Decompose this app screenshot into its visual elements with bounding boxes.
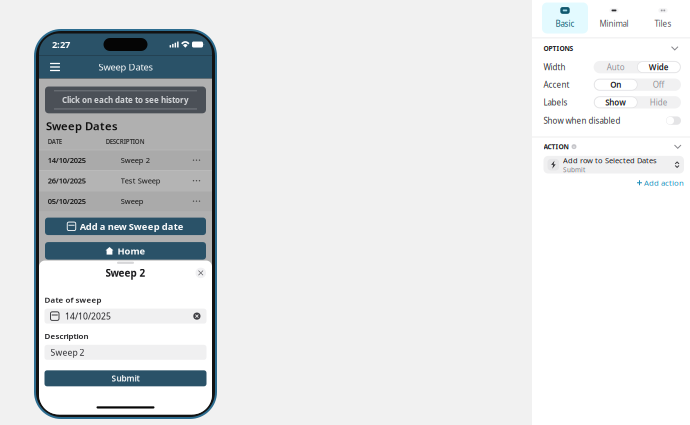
staticText: Add row to Selected Dates xyxy=(563,155,657,165)
button[interactable]: On xyxy=(594,79,637,90)
button[interactable]: Submit xyxy=(44,370,206,386)
staticText: Date of sweep xyxy=(44,294,101,305)
staticText: Minimal xyxy=(599,18,628,29)
staticText: Hide xyxy=(650,97,668,108)
button[interactable]: Tiles xyxy=(640,2,686,33)
staticText: Submit xyxy=(563,165,585,174)
staticText: DATE xyxy=(48,137,62,146)
staticText: Basic xyxy=(555,18,574,29)
button[interactable]: Wide xyxy=(637,62,680,73)
staticText: Submit xyxy=(111,373,139,384)
staticText: Add a new Sweep date xyxy=(80,220,184,232)
button[interactable]: Hide xyxy=(637,97,680,108)
staticText: Sweep 2 xyxy=(121,155,150,165)
button[interactable]: Show xyxy=(594,97,637,108)
button[interactable]: Click on each date to see history xyxy=(45,86,206,113)
staticText: Test Sweep xyxy=(121,176,161,186)
button[interactable]: Basic xyxy=(542,2,588,33)
button[interactable]: Auto xyxy=(594,62,637,73)
button[interactable]: Add row to Selected Dates xyxy=(543,156,684,173)
staticText: Off xyxy=(653,79,665,90)
staticText: 26/10/2025 xyxy=(48,176,86,186)
button[interactable]: Collapse action xyxy=(671,142,684,151)
button[interactable]: 05/10/2025 xyxy=(39,191,212,211)
staticText: Click on each date to see history xyxy=(62,95,189,105)
staticText: Sweep Dates xyxy=(98,61,152,73)
staticText: Auto xyxy=(607,62,625,72)
staticText: Sweep Dates xyxy=(46,118,118,134)
button[interactable]: Add action xyxy=(637,174,684,191)
button[interactable]: 26/10/2025 xyxy=(39,170,212,191)
staticText: Sweep 2 xyxy=(105,266,145,280)
button[interactable]: Add a new Sweep date xyxy=(45,218,206,235)
button[interactable]: Collapse options xyxy=(668,44,681,53)
staticText: Labels xyxy=(543,97,567,108)
staticText: 05/10/2025 xyxy=(48,196,86,206)
button[interactable]: 14/10/2025 xyxy=(44,309,206,324)
staticText: Wide xyxy=(649,62,669,72)
button[interactable]: Off xyxy=(637,79,680,90)
button[interactable]: 14/10/2025 xyxy=(39,150,212,170)
staticText: Show xyxy=(605,97,626,108)
staticText: Sweep 2 xyxy=(50,346,84,358)
button[interactable]: Menu xyxy=(46,58,64,76)
staticText: Home xyxy=(117,245,145,257)
staticText: DESCRIPTION xyxy=(106,137,145,146)
staticText: Width xyxy=(543,62,565,72)
staticText: On xyxy=(610,79,621,90)
button[interactable]: Show when disabled xyxy=(666,116,681,125)
button[interactable]: Minimal xyxy=(591,2,637,33)
staticText: Accent xyxy=(543,79,569,90)
staticText: 14/10/2025 xyxy=(48,155,86,165)
staticText: Show when disabled xyxy=(543,115,620,126)
staticText: 14/10/2025 xyxy=(65,310,111,322)
staticText: 2:27 xyxy=(52,38,70,51)
staticText: Description xyxy=(44,331,88,341)
staticText: Sweep xyxy=(121,196,144,206)
button[interactable]: Close xyxy=(194,267,207,279)
staticText: OPTIONS xyxy=(543,44,573,53)
staticText: ACTION xyxy=(543,142,568,151)
staticText: Add action xyxy=(644,177,684,188)
staticText: Tiles xyxy=(654,18,671,29)
button[interactable]: Home xyxy=(45,242,206,260)
